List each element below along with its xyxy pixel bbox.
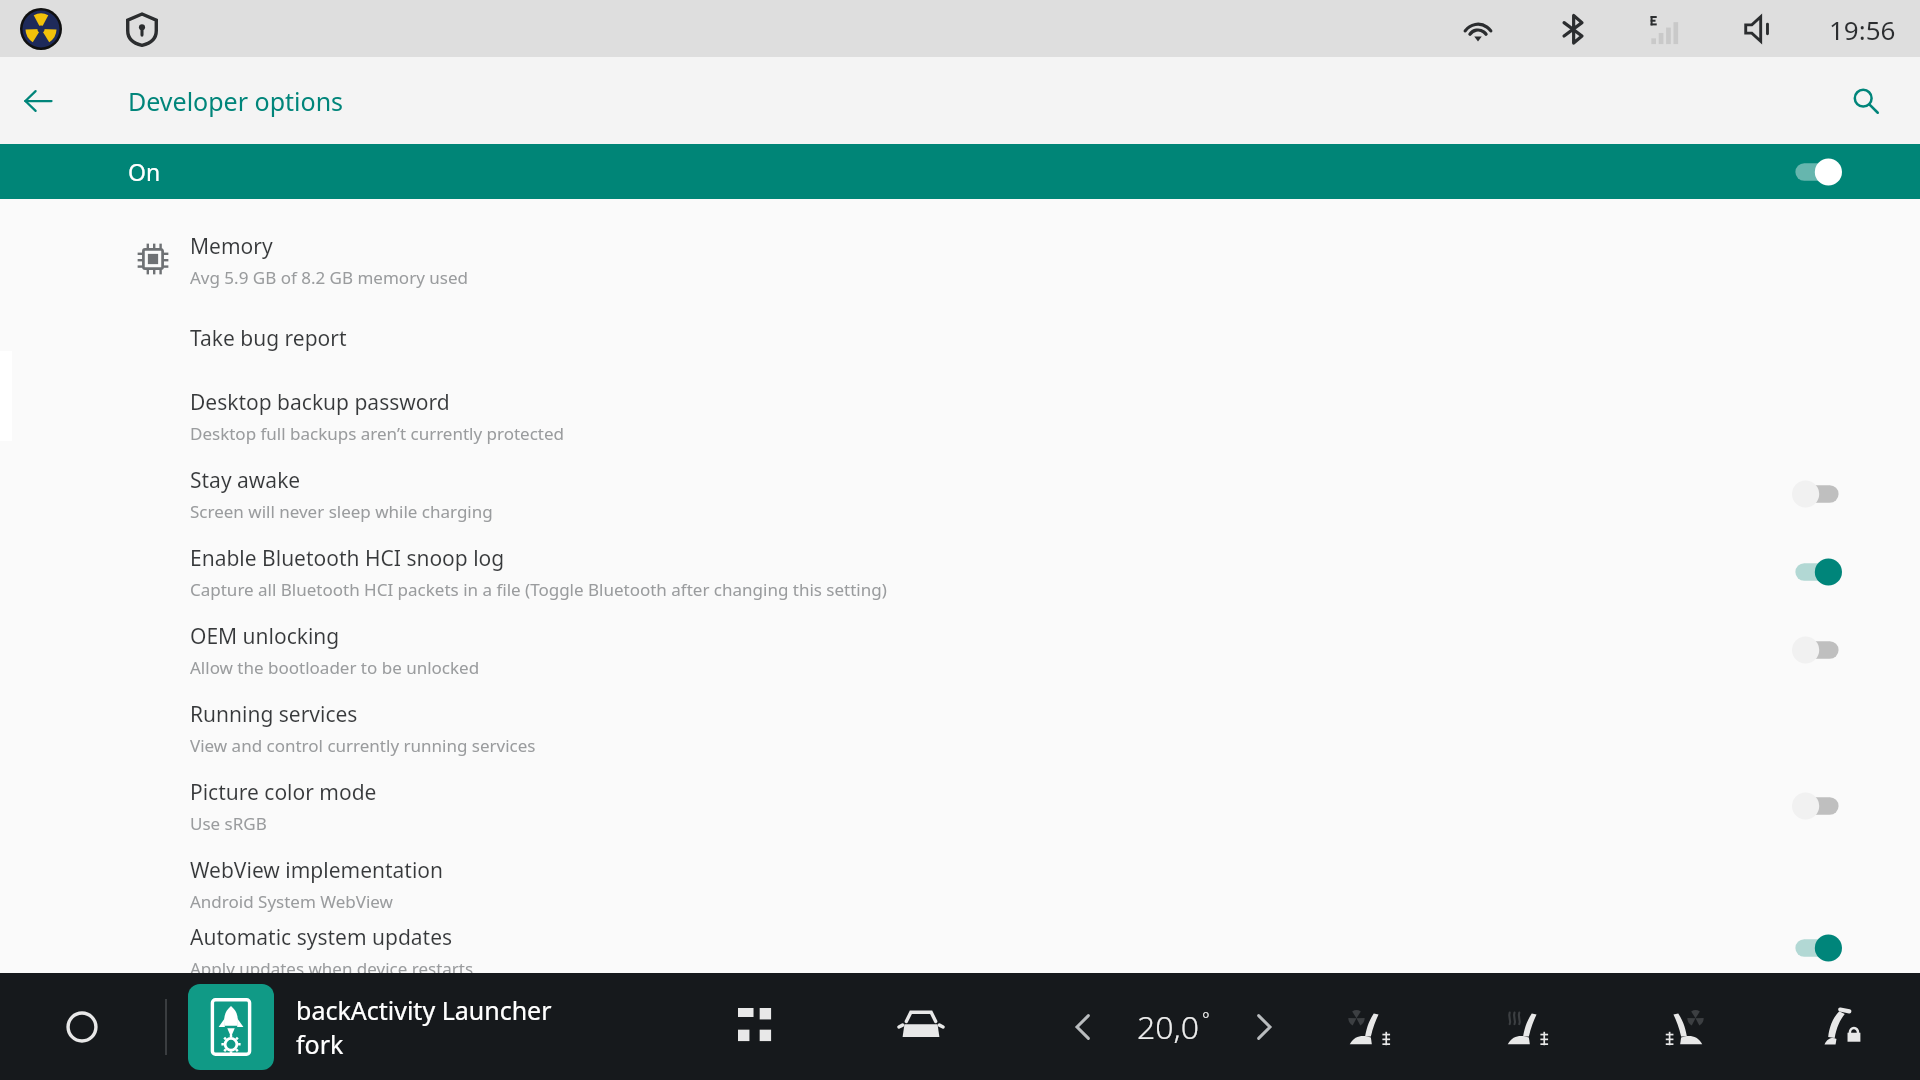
staticText: backActivity Launcher: [296, 993, 552, 1027]
button[interactable]: OEM unlocking: [0, 611, 1920, 689]
button[interactable]: [1790, 931, 1844, 965]
button[interactable]: [1790, 789, 1844, 823]
button[interactable]: Driver seat ventilation: [1332, 991, 1404, 1063]
button[interactable]: [1790, 633, 1844, 667]
staticText: Capture all Bluetooth HCI packets in a f…: [190, 578, 887, 601]
staticText: Picture color mode: [190, 778, 377, 807]
button[interactable]: backActivity Launcher: [188, 984, 552, 1070]
button[interactable]: Car: [885, 991, 957, 1063]
button[interactable]: Back: [6, 69, 70, 133]
staticText: Enable Bluetooth HCI snoop log: [190, 544, 505, 573]
button[interactable]: On: [0, 144, 1920, 199]
staticText: OEM unlocking: [190, 622, 340, 651]
button[interactable]: Running services: [0, 689, 1920, 767]
staticText: Take bug report: [190, 324, 347, 353]
staticText: View and control currently running servi…: [190, 734, 536, 757]
button[interactable]: WebView implementation: [0, 845, 1920, 923]
button[interactable]: [1790, 477, 1844, 511]
button[interactable]: Automatic system updates: [0, 923, 1920, 973]
staticText: Screen will never sleep while charging: [190, 500, 493, 523]
button[interactable]: [1790, 555, 1844, 589]
button[interactable]: Search: [1836, 71, 1896, 131]
button[interactable]: 20,0: [1137, 1005, 1210, 1049]
button[interactable]: Apps: [721, 991, 793, 1063]
staticText: 20,0: [1137, 1005, 1200, 1049]
button[interactable]: Increase temperature: [1228, 991, 1300, 1063]
button[interactable]: Stay awake: [0, 455, 1920, 533]
staticText: Avg 5.9 GB of 8.2 GB memory used: [190, 266, 468, 289]
button[interactable]: Picture color mode: [0, 767, 1920, 845]
button[interactable]: Desktop backup password: [0, 377, 1920, 455]
staticText: Running services: [190, 700, 358, 729]
button[interactable]: Driver seat heating: [1490, 991, 1562, 1063]
staticText: On: [128, 156, 161, 187]
staticText: Use sRGB: [190, 812, 267, 835]
staticText: 19:56: [1829, 12, 1896, 47]
staticText: Android System WebView: [190, 890, 393, 913]
button[interactable]: Memory: [0, 221, 1920, 299]
button[interactable]: Home: [50, 995, 114, 1059]
staticText: Desktop full backups aren’t currently pr…: [190, 422, 565, 445]
staticText: WebView implementation: [190, 856, 444, 885]
button[interactable]: Passenger seat ventilation: [1648, 991, 1720, 1063]
staticText: Apply updates when device restarts: [190, 957, 474, 973]
staticText: Memory: [190, 232, 273, 261]
staticText: Allow the bootloader to be unlocked: [190, 656, 480, 679]
staticText: Automatic system updates: [190, 923, 453, 952]
staticText: Developer options: [128, 84, 344, 118]
button[interactable]: [1790, 155, 1844, 189]
button[interactable]: Enable Bluetooth HCI snoop log: [0, 533, 1920, 611]
staticText: °: [1202, 1007, 1210, 1032]
staticText: fork: [296, 1027, 344, 1061]
button[interactable]: Decrease temperature: [1047, 991, 1119, 1063]
button[interactable]: Child lock: [1806, 991, 1878, 1063]
staticText: Desktop backup password: [190, 388, 450, 417]
staticText: Stay awake: [190, 466, 301, 495]
button[interactable]: Take bug report: [0, 299, 1920, 377]
